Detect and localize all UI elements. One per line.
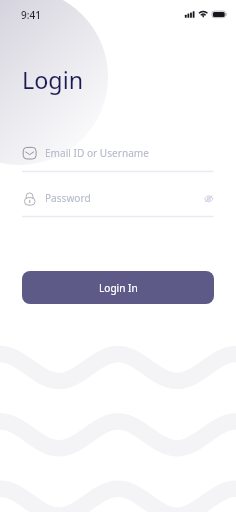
button[interactable]: Show password [199,189,219,209]
staticText: Login In [99,281,138,295]
button[interactable] [22,187,192,217]
staticText: Password [45,191,91,205]
button[interactable] [22,142,213,172]
staticText: Login [22,64,84,96]
staticText: 9:41 [21,8,41,22]
button[interactable]: Login In [22,271,214,304]
staticText: Email ID or Username [45,146,149,160]
